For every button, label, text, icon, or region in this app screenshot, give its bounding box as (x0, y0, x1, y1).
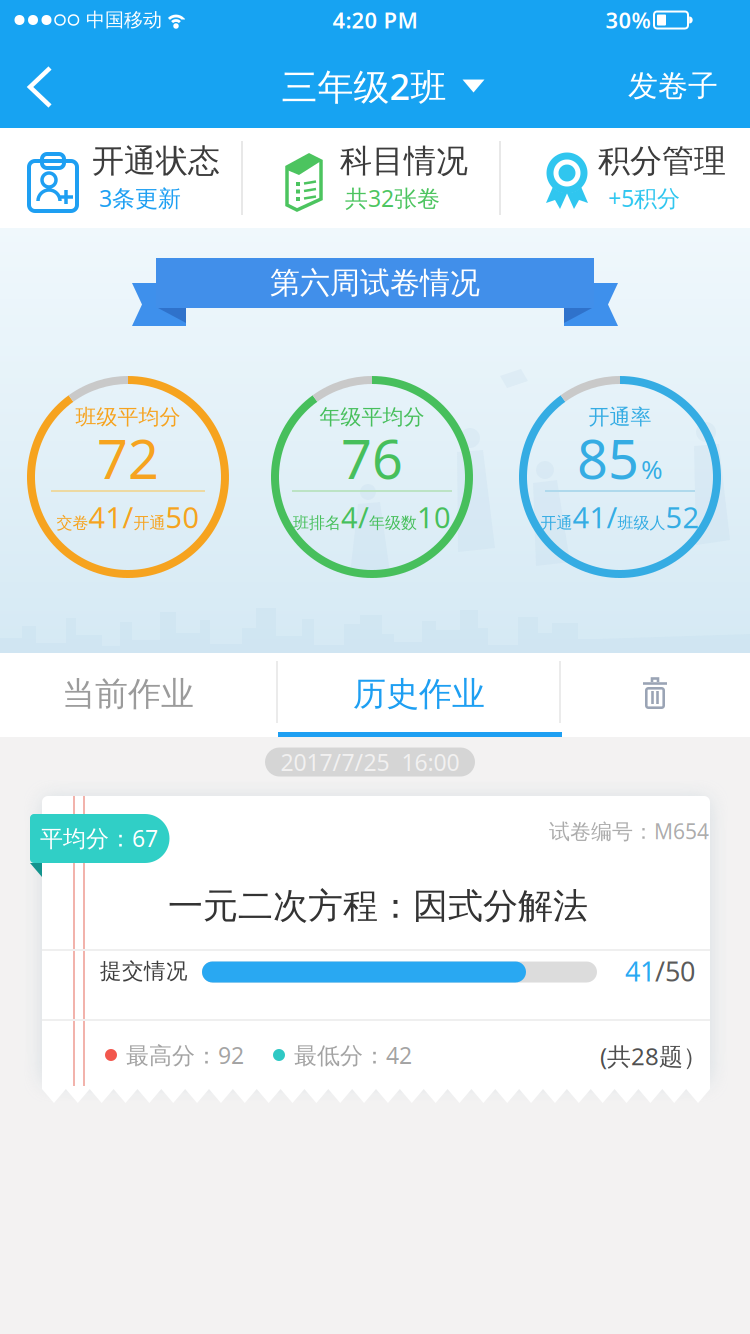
button[interactable] (42, 796, 710, 1104)
button[interactable]: 发卷子 (628, 67, 718, 105)
staticText: 开通 (133, 513, 165, 533)
staticText: 班级人 (617, 513, 665, 533)
staticText: 最高分：92 (126, 1039, 244, 1071)
button[interactable] (27, 65, 53, 109)
staticText: 共32张卷 (345, 182, 440, 214)
staticText: 历史作业 (353, 673, 485, 715)
button[interactable]: 科目情况 (251, 128, 491, 228)
staticText: 班排名 (293, 513, 341, 533)
button[interactable]: 开通状态 (5, 128, 245, 228)
button[interactable]: 积分管理 (505, 128, 745, 228)
staticText: 第六周试卷情况 (270, 264, 480, 302)
staticText: 科目情况 (340, 141, 468, 181)
staticText: 30% (605, 5, 650, 35)
staticText: 3条更新 (99, 182, 181, 214)
staticText: 41/ (88, 497, 133, 537)
staticText: 开通 (540, 513, 572, 533)
staticText: 提交情况 (100, 957, 188, 985)
staticText: 年级数 (369, 513, 417, 533)
staticText: 开通状态 (92, 141, 220, 181)
staticText: 积分管理 (598, 141, 726, 181)
staticText: 41/ (572, 497, 617, 537)
button[interactable]: 三年级2班 (281, 61, 484, 110)
staticText: 一元二次方程：因式分解法 (168, 884, 588, 928)
staticText: 开通率 (588, 404, 651, 430)
staticText: 72 (97, 421, 159, 495)
staticText: 4/ (341, 497, 369, 537)
staticText: % (641, 451, 663, 487)
staticText: 平均分：67 (40, 822, 158, 854)
staticText: 试卷编号：M654 (549, 817, 709, 845)
button[interactable] (642, 677, 668, 709)
staticText: 年级平均分 (319, 404, 424, 430)
staticText: 班级平均分 (75, 404, 180, 430)
button[interactable]: 当前作业 (0, 652, 263, 736)
staticText: +5积分 (608, 182, 680, 214)
staticText: 41 (625, 953, 655, 989)
staticText: (共28题） (600, 1040, 707, 1072)
button[interactable]: 2017/7/25 16:00 (265, 747, 475, 776)
staticText: 2017/7/25 16:00 (280, 746, 459, 778)
staticText: /50 (655, 953, 695, 989)
staticText: 50 (165, 497, 199, 537)
staticText: 10 (417, 497, 451, 537)
staticText: 76 (341, 421, 403, 495)
staticText: 85 (577, 421, 639, 495)
staticText: 52 (665, 497, 699, 537)
staticText: 中国移动 (86, 8, 162, 32)
staticText: 三年级2班 (281, 61, 446, 110)
staticText: 发卷子 (628, 67, 718, 105)
staticText: 4:20 PM (332, 5, 417, 35)
staticText: 当前作业 (62, 673, 194, 715)
button[interactable]: 历史作业 (281, 652, 557, 736)
staticText: 最低分：42 (294, 1039, 412, 1071)
staticText: 交卷 (56, 513, 88, 533)
